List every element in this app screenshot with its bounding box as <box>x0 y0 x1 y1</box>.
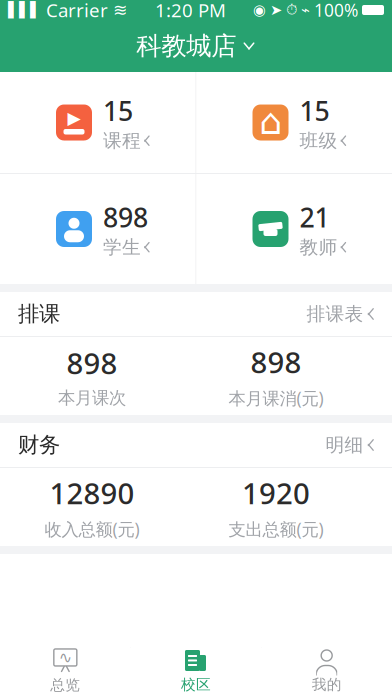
staticText: ◉ <box>253 2 266 18</box>
staticText: ▶ <box>67 108 80 128</box>
staticText: 校区 <box>181 675 211 693</box>
staticText: 100% <box>314 0 358 21</box>
staticText: Carrier <box>46 0 108 22</box>
staticText: ➤ <box>270 2 282 18</box>
button[interactable]: 898 <box>0 174 195 284</box>
staticText: 明细 <box>325 433 363 456</box>
button[interactable]: 校区 <box>131 642 261 696</box>
staticText: 收入总额(元) <box>44 517 139 540</box>
staticText: 排课 <box>18 301 60 327</box>
staticText: 总览 <box>50 676 80 694</box>
button[interactable]: 21 <box>196 174 392 284</box>
staticText: 科教城店 <box>136 30 236 61</box>
button[interactable]: 明细 <box>311 425 374 464</box>
button[interactable]: 科教城店 <box>126 24 266 67</box>
staticText: ▌▌▌ <box>8 2 41 18</box>
staticText: 898 <box>66 343 117 382</box>
staticText: 支出总额(元) <box>228 517 323 540</box>
button[interactable]: 我的 <box>261 642 392 696</box>
staticText: 教师 <box>299 236 337 259</box>
staticText: 15 <box>299 93 329 128</box>
staticText: ⌁ <box>301 2 310 18</box>
staticText: 财务 <box>18 432 60 458</box>
staticText: 本月课消(元) <box>228 386 323 409</box>
button[interactable]: ▶ <box>0 72 195 173</box>
staticText: ⌂ <box>259 101 282 142</box>
staticText: 1:20 PM <box>155 0 226 22</box>
staticText: 21 <box>299 199 329 235</box>
staticText: 我的 <box>312 675 342 693</box>
staticText: 课程 <box>103 129 141 152</box>
button[interactable]: ⌂ <box>196 72 392 173</box>
staticText: ∿ <box>59 648 72 667</box>
staticText: 排课表 <box>306 302 363 325</box>
staticText: 898 <box>103 199 148 235</box>
staticText: ⏱ <box>286 3 297 17</box>
staticText: 学生 <box>103 236 141 259</box>
button[interactable]: 排课表 <box>292 294 374 333</box>
staticText: ≋ <box>113 0 128 20</box>
staticText: 898 <box>250 342 301 381</box>
staticText: 15 <box>103 93 133 128</box>
staticText: 班级 <box>299 129 337 152</box>
staticText: 12890 <box>49 473 134 512</box>
staticText: 本月课次 <box>58 387 126 409</box>
button[interactable]: ∿ <box>0 642 131 696</box>
staticText: 1920 <box>242 473 310 512</box>
